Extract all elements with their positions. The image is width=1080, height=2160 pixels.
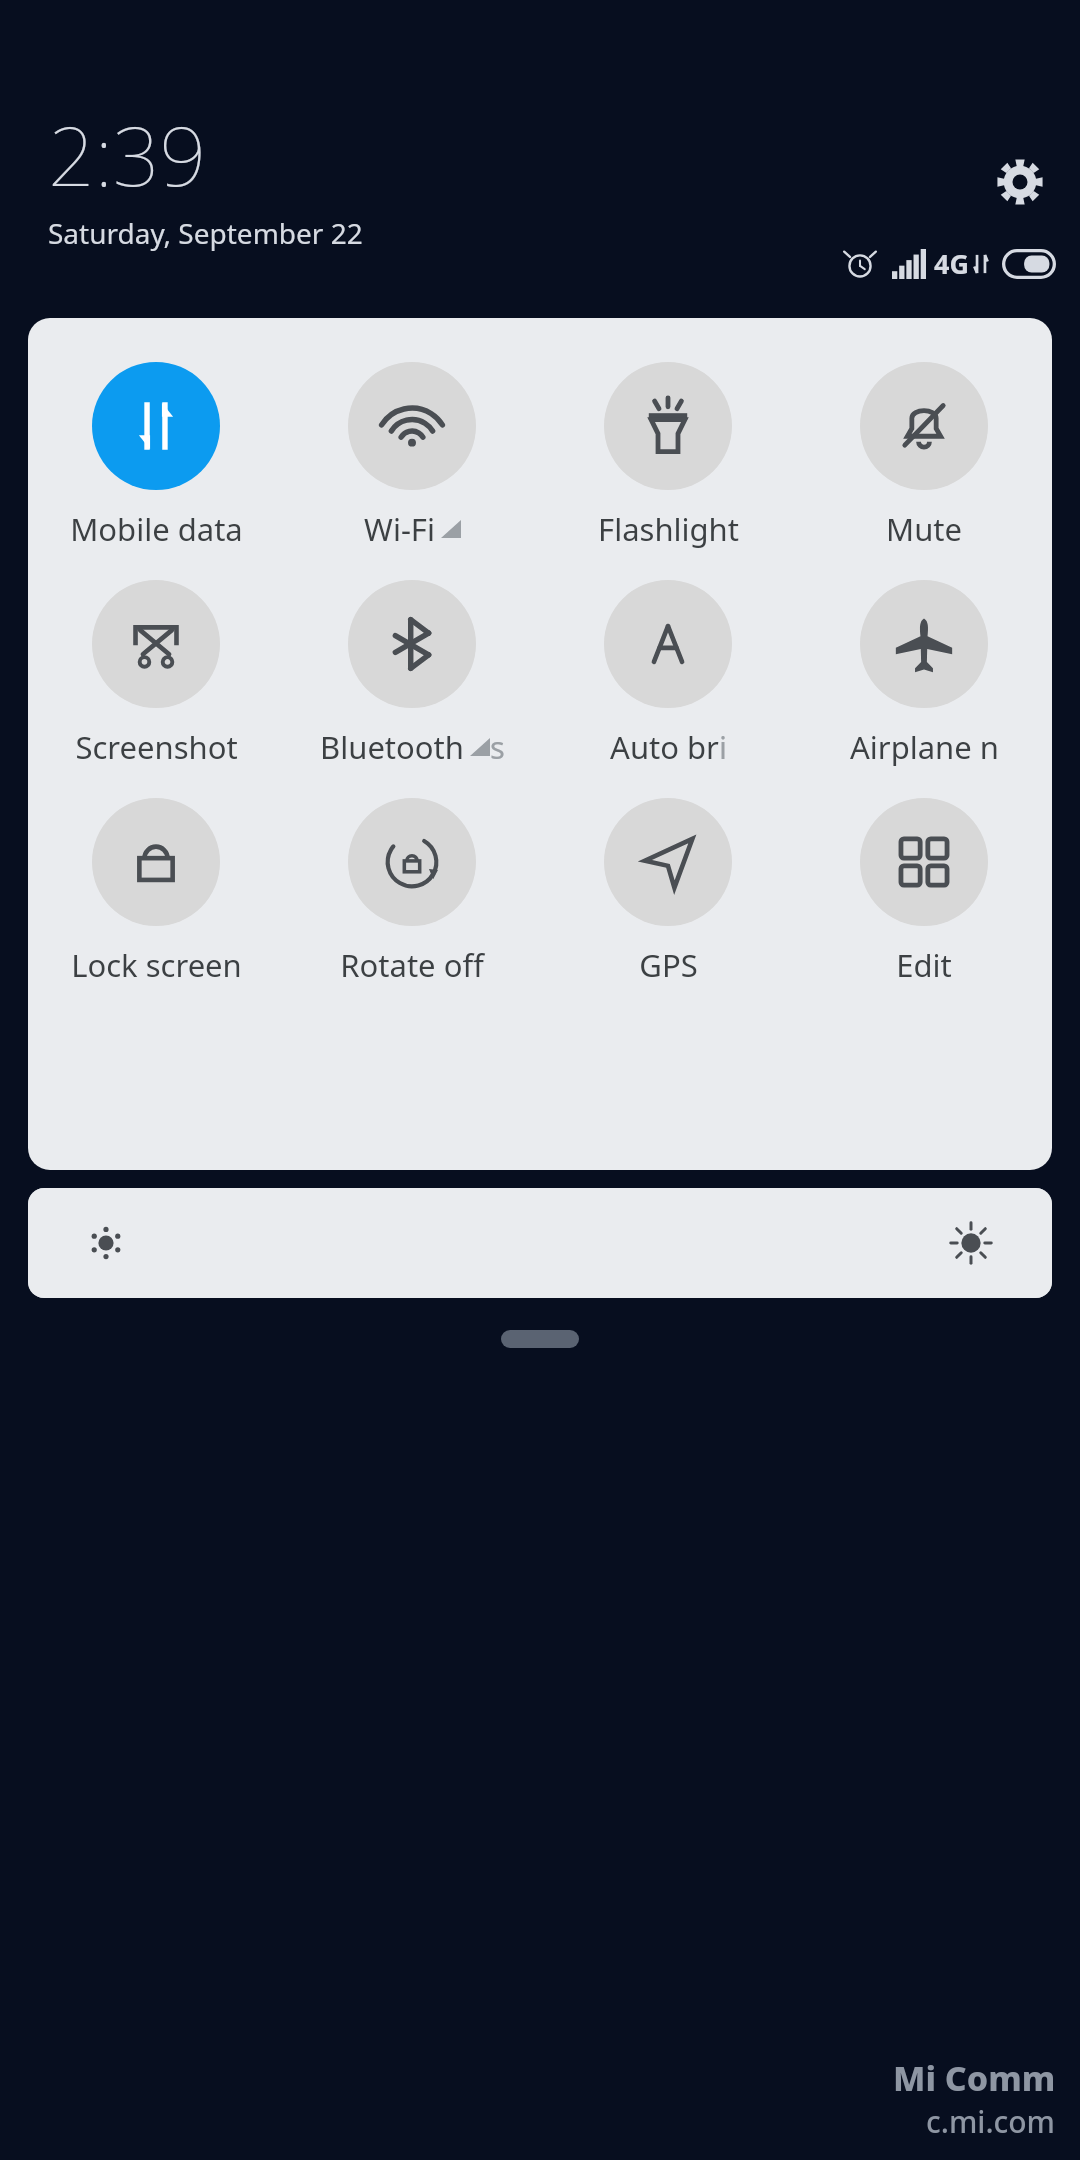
- button[interactable]: Airplane n: [796, 580, 1052, 768]
- button[interactable]: Bluetooth: [284, 580, 540, 768]
- staticText: Mi Comm: [893, 2055, 1056, 2101]
- staticText: Screenshot: [75, 726, 238, 768]
- staticText: Rotate off: [340, 944, 484, 986]
- button[interactable]: Flashlight: [540, 362, 796, 550]
- button[interactable]: Mute: [796, 362, 1052, 550]
- button[interactable]: Settings: [988, 150, 1052, 214]
- staticText: Edit: [896, 944, 952, 986]
- staticText: Bluetooth: [320, 726, 464, 768]
- staticText: Lock screen: [71, 944, 242, 986]
- staticText: 2:39: [48, 98, 207, 210]
- staticText: GPS: [639, 944, 698, 986]
- staticText: Mobile data: [70, 508, 243, 550]
- staticText: Saturday, September 22: [48, 214, 363, 252]
- button[interactable]: GPS: [540, 798, 796, 986]
- staticText: s: [490, 726, 505, 768]
- staticText: i: [719, 726, 727, 768]
- staticText: Mute: [886, 508, 962, 550]
- button[interactable]: Mobile data: [28, 362, 284, 550]
- staticText: 4G: [934, 245, 969, 282]
- button[interactable]: Auto br: [540, 580, 796, 768]
- button[interactable]: Edit: [796, 798, 1052, 986]
- button[interactable]: Expand: [501, 1330, 579, 1348]
- button[interactable]: Brightness: [28, 1188, 1052, 1298]
- button[interactable]: Wi-Fi: [284, 362, 540, 550]
- button[interactable]: Screenshot: [28, 580, 284, 768]
- staticText: c.mi.com: [926, 2101, 1056, 2142]
- button[interactable]: Lock screen: [28, 798, 284, 986]
- staticText: Airplane n: [850, 726, 999, 768]
- staticText: Flashlight: [598, 508, 739, 550]
- staticText: Auto br: [610, 726, 719, 768]
- staticText: Wi-Fi: [364, 508, 435, 550]
- button[interactable]: Rotate off: [284, 798, 540, 986]
